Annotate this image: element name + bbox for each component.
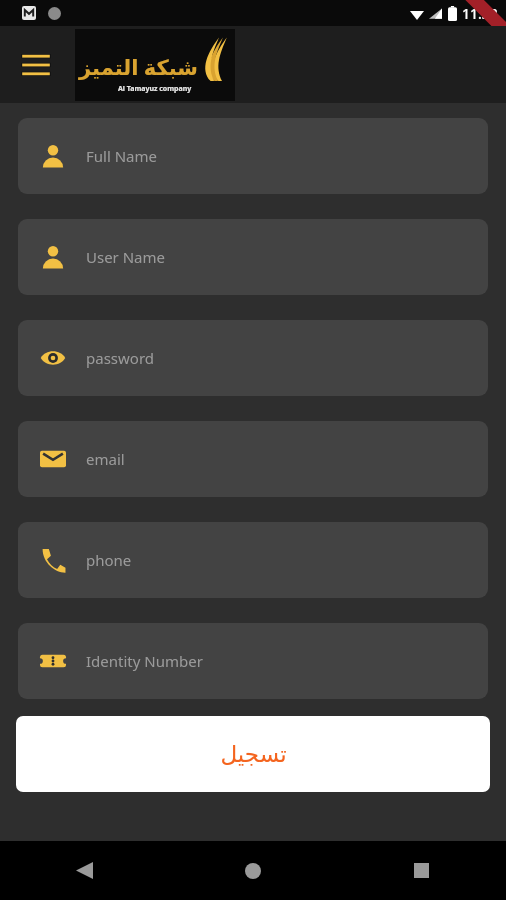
staticText: Identity Number <box>86 651 203 671</box>
button[interactable]: email <box>18 421 488 497</box>
staticText: Al Tamayuz company <box>118 84 192 94</box>
staticText: Full Name <box>86 146 157 166</box>
staticText: phone <box>86 550 132 570</box>
staticText: User Name <box>86 247 166 267</box>
staticText: 11:32 <box>462 4 498 23</box>
button[interactable]: تسجيل <box>16 716 490 792</box>
button[interactable]: phone <box>18 522 488 598</box>
button[interactable]: Home <box>168 841 337 900</box>
staticText: شبكة التميز <box>79 53 199 82</box>
button[interactable]: Recents <box>337 841 506 900</box>
staticText: email <box>86 449 125 469</box>
button[interactable]: Full Name <box>18 118 488 194</box>
button[interactable]: Back <box>0 841 168 900</box>
button[interactable]: Menu <box>14 43 58 87</box>
button[interactable]: Identity Number <box>18 623 488 699</box>
staticText: password <box>86 348 154 368</box>
button[interactable]: User Name <box>18 219 488 295</box>
button[interactable]: password <box>18 320 488 396</box>
staticText: تسجيل <box>220 741 287 768</box>
